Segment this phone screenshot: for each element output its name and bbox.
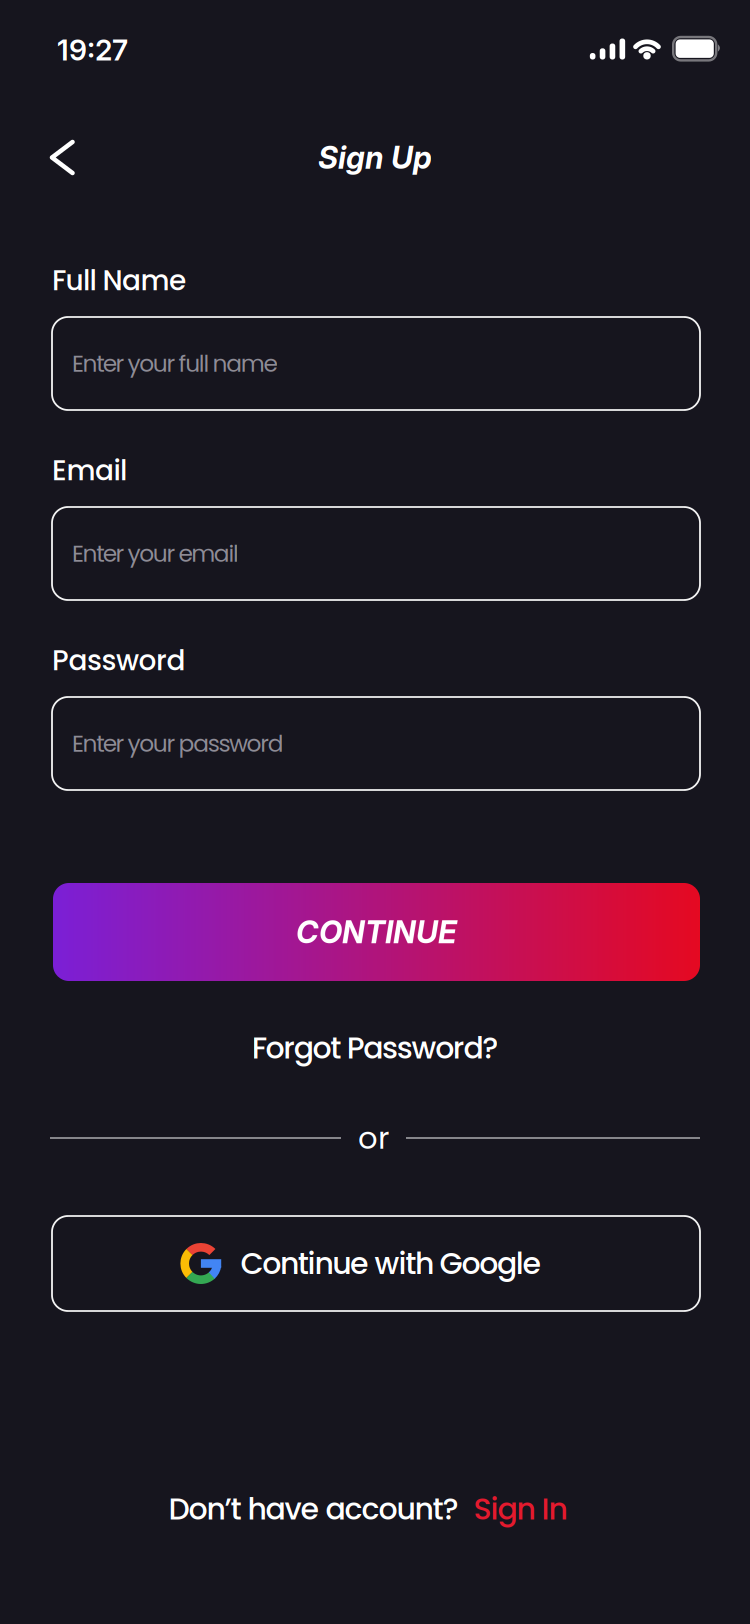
- button[interactable]: CONTINUE: [53, 883, 700, 981]
- staticText: Continue with Google: [240, 1242, 542, 1284]
- staticText: Sign Up: [318, 139, 432, 176]
- staticText: Sign In: [473, 1488, 567, 1530]
- staticText: CONTINUE: [296, 913, 457, 950]
- button[interactable]: Sign In: [473, 1488, 567, 1530]
- staticText: or: [358, 1116, 389, 1159]
- button[interactable]: Enter your email: [52, 507, 700, 600]
- staticText: 19:27: [57, 33, 128, 67]
- button[interactable]: Back: [0, 139, 75, 175]
- button[interactable]: Forgot Password?: [252, 1026, 498, 1070]
- button[interactable]: Continue with Google: [52, 1216, 700, 1311]
- button[interactable]: Enter your password: [52, 697, 700, 790]
- staticText: Forgot Password?: [252, 1027, 498, 1069]
- staticText: Full Name: [52, 261, 186, 300]
- staticText: Enter your email: [72, 537, 239, 570]
- staticText: Enter your full name: [72, 347, 277, 380]
- staticText: Email: [52, 451, 127, 490]
- staticText: Password: [52, 641, 185, 680]
- staticText: Enter your password: [72, 727, 284, 760]
- staticText: Don’t have account?: [168, 1488, 458, 1530]
- button[interactable]: Enter your full name: [52, 317, 700, 410]
